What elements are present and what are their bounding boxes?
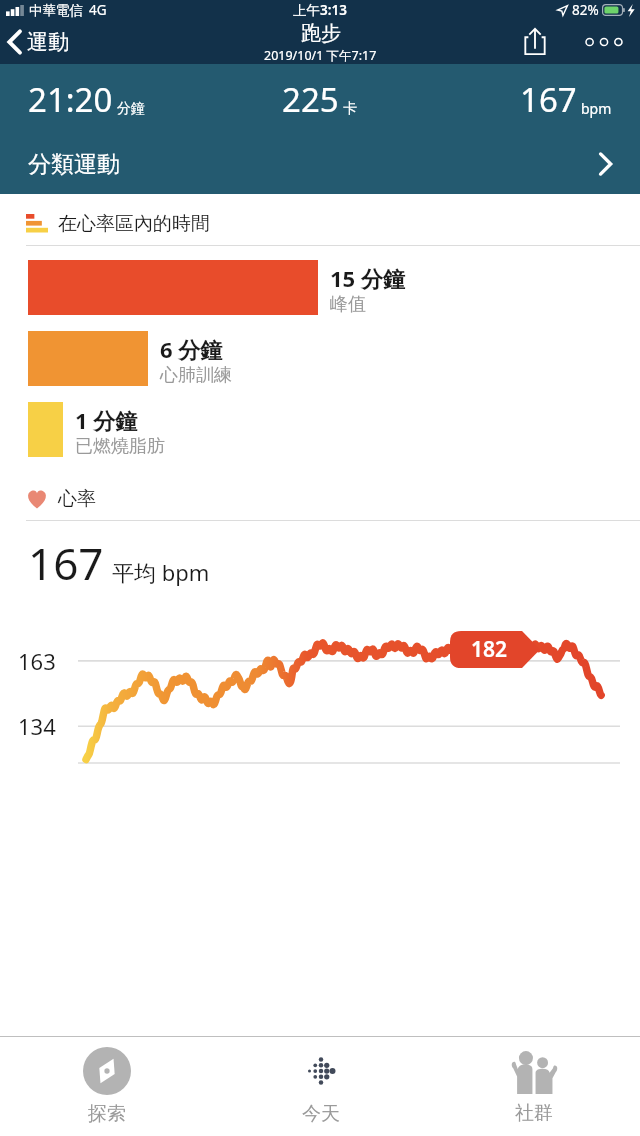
staticText: 峰值 bbox=[330, 293, 366, 316]
staticText: 今天 bbox=[302, 1102, 340, 1126]
staticText: 225 bbox=[282, 77, 339, 122]
staticText: 6 分鐘 bbox=[160, 334, 223, 364]
staticText: 運動 bbox=[27, 29, 69, 55]
button[interactable]: 分類運動 bbox=[0, 134, 640, 194]
staticText: 15 分鐘 bbox=[330, 263, 405, 293]
staticText: 平均 bpm bbox=[112, 557, 210, 587]
button[interactable]: Explore bbox=[0, 1037, 214, 1136]
staticText: 中華電信 bbox=[29, 2, 83, 19]
staticText: 167 bbox=[28, 533, 104, 593]
staticText: 上午3:13 bbox=[293, 1, 347, 19]
staticText: 182 bbox=[471, 635, 508, 664]
button[interactable]: Today bbox=[214, 1037, 427, 1136]
staticText: 134 bbox=[18, 711, 56, 741]
staticText: 4G bbox=[89, 1, 107, 19]
staticText: 21:20 bbox=[28, 77, 113, 122]
staticText: 82% bbox=[572, 1, 599, 19]
staticText: 心率 bbox=[58, 487, 96, 511]
staticText: 分類運動 bbox=[28, 150, 120, 179]
staticText: 分鐘 bbox=[117, 100, 145, 118]
staticText: 2019/10/1 下午7:17 bbox=[264, 47, 377, 64]
button[interactable]: Share bbox=[514, 24, 556, 60]
staticText: 163 bbox=[18, 646, 56, 676]
staticText: bpm bbox=[581, 99, 612, 118]
staticText: 在心率區內的時間 bbox=[58, 212, 210, 236]
button[interactable]: More options bbox=[574, 28, 634, 56]
button[interactable]: 運動 bbox=[0, 25, 77, 59]
staticText: 跑步 bbox=[301, 21, 341, 46]
staticText: 167 bbox=[520, 77, 577, 122]
staticText: 已燃燒脂肪 bbox=[75, 435, 165, 458]
staticText: 1 分鐘 bbox=[75, 405, 138, 435]
button[interactable]: Community bbox=[427, 1037, 640, 1136]
staticText: 心肺訓練 bbox=[160, 364, 232, 387]
staticText: 卡 bbox=[343, 100, 357, 118]
staticText: 探索 bbox=[88, 1102, 126, 1126]
staticText: 社群 bbox=[515, 1101, 553, 1125]
